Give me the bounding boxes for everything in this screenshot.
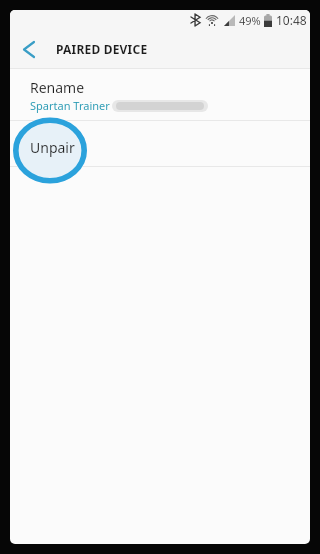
staticText: PAIRED DEVICE [56, 41, 148, 57]
staticText: 49% [239, 13, 261, 28]
staticText: Unpair [30, 136, 75, 155]
staticText: Spartan Trainer [30, 98, 110, 113]
button[interactable]: Rename [10, 69, 310, 120]
button[interactable] [10, 30, 48, 68]
button[interactable]: Unpair [10, 121, 310, 166]
staticText: Rename [30, 78, 85, 97]
staticText: 10:48 [276, 12, 307, 28]
staticText: Unpair [30, 138, 75, 157]
